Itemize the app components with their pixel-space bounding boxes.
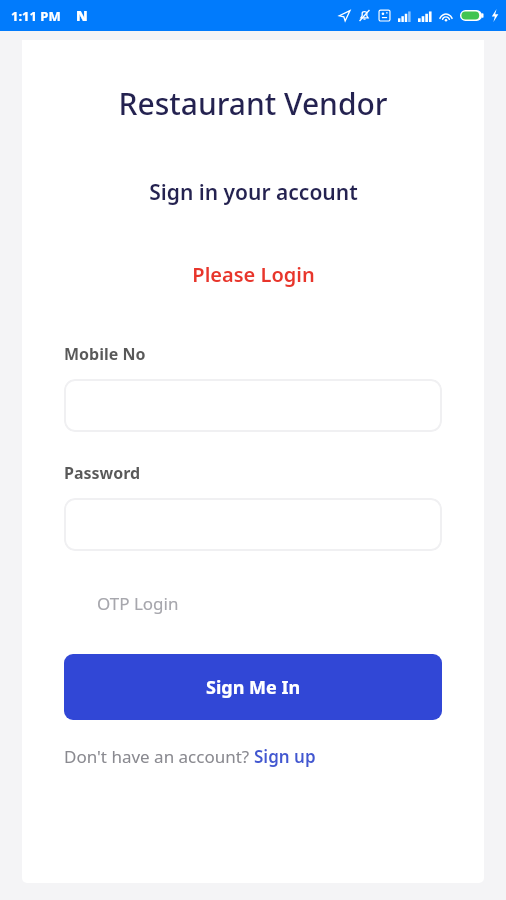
button[interactable]: Sign up	[254, 745, 316, 768]
button[interactable]: Text input field	[64, 498, 442, 551]
staticText: Mobile No	[64, 343, 146, 365]
button[interactable]: Sign Me In	[64, 654, 442, 720]
staticText: 1:11 PM	[11, 7, 61, 25]
staticText: Sign up	[254, 745, 316, 768]
staticText: Don't have an account?	[64, 745, 254, 768]
button[interactable]: OTP Login	[95, 590, 181, 617]
staticText: Restaurant Vendor	[118, 83, 388, 124]
staticText: Password	[64, 462, 141, 484]
button[interactable]: Text input field	[64, 379, 442, 432]
staticText: Sign in your account	[149, 178, 358, 207]
staticText: Sign Me In	[206, 675, 301, 700]
staticText: OTP Login	[97, 592, 179, 615]
staticText: Please Login	[192, 261, 315, 288]
staticText: N	[76, 6, 88, 25]
